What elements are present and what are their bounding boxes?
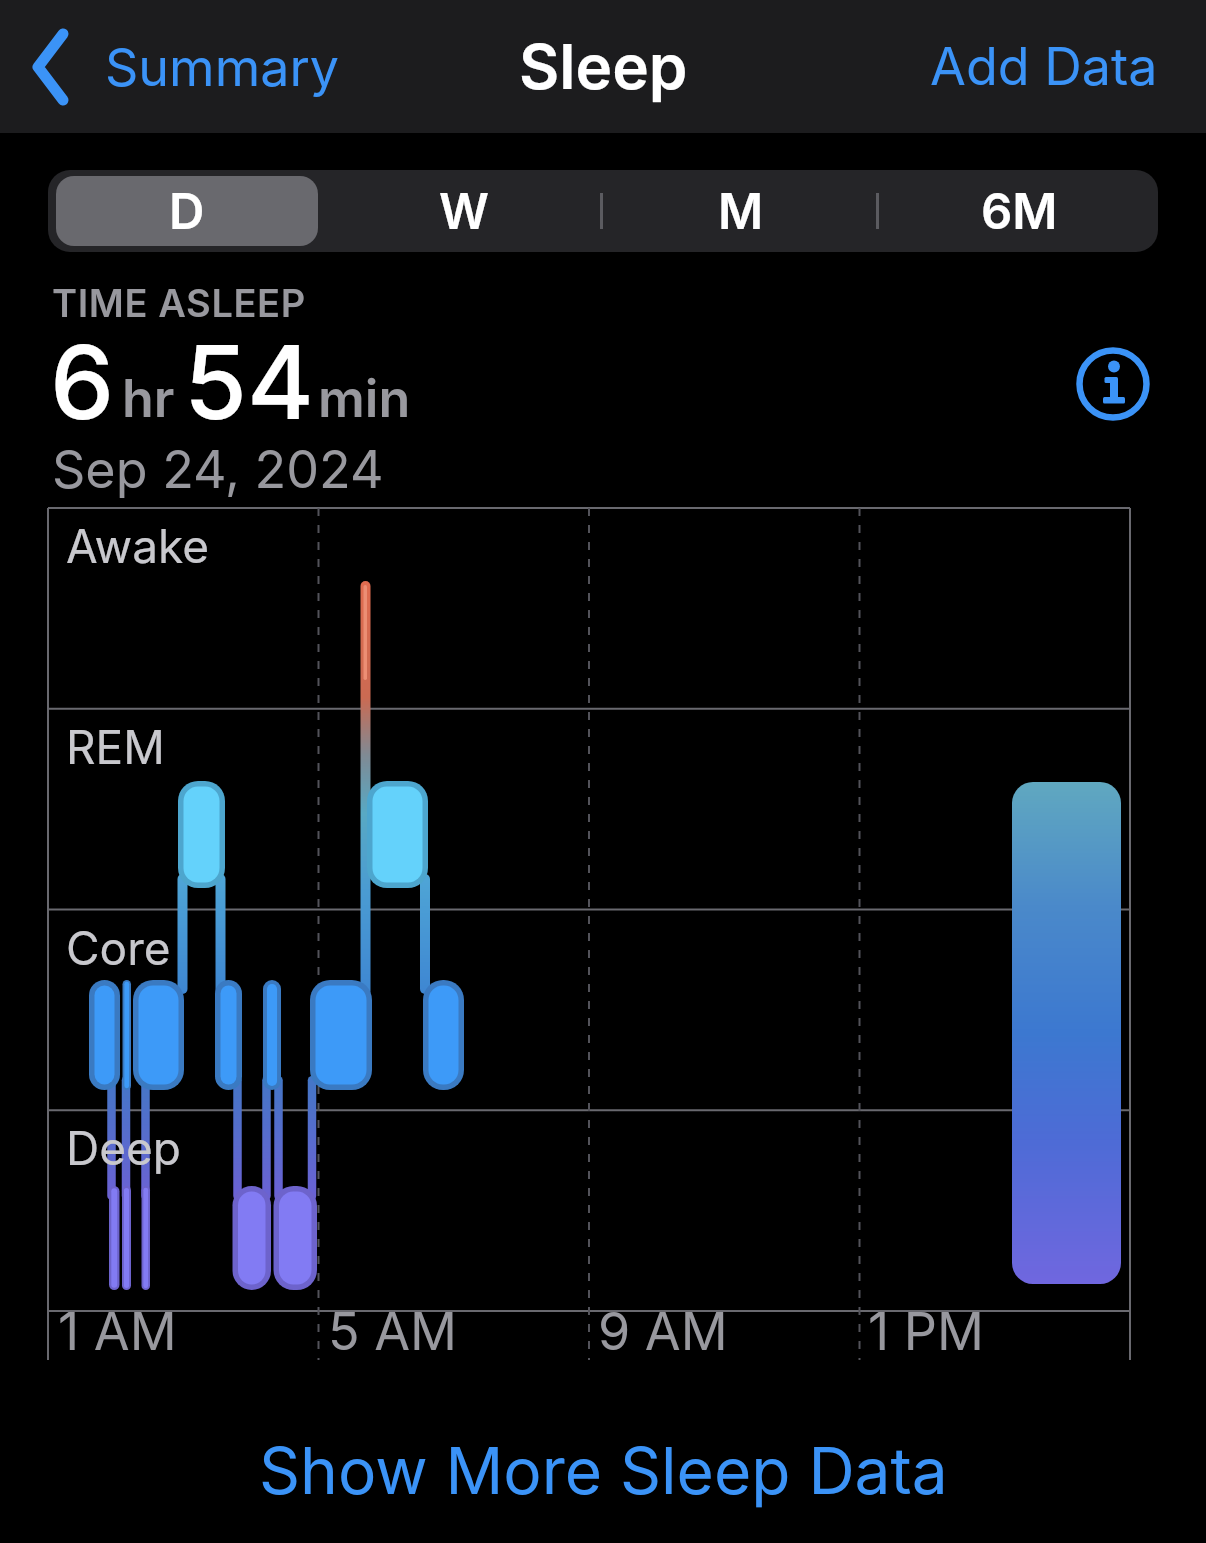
button[interactable]: Summary (0, 29, 340, 105)
staticText: 9 AM (598, 1300, 728, 1363)
staticText: TIME ASLEEP (52, 280, 306, 326)
staticText: D (169, 182, 205, 241)
staticText: Deep (66, 1120, 181, 1176)
staticText: 5 AM (328, 1300, 458, 1363)
staticText: 1 AM (58, 1300, 177, 1363)
staticText: 1 PM (868, 1300, 984, 1363)
staticText: Add Data (930, 35, 1158, 98)
staticText: M (718, 182, 764, 241)
staticText: Core (66, 920, 171, 976)
staticText: 6 (50, 320, 115, 443)
button[interactable]: W (325, 170, 602, 252)
button[interactable]: Show More Sleep Data (259, 1432, 948, 1509)
button[interactable]: Add Data (930, 35, 1206, 98)
staticText: W (439, 182, 489, 241)
staticText: Sleep (519, 29, 688, 104)
staticText: hr (122, 367, 175, 430)
staticText: Awake (66, 518, 210, 574)
staticText: Show More Sleep Data (259, 1432, 948, 1509)
staticText: 54 (184, 320, 314, 443)
button[interactable]: D (48, 170, 325, 252)
staticText: REM (66, 719, 165, 775)
staticText: Summary (105, 36, 340, 99)
staticText: Sep 24, 2024 (52, 438, 384, 501)
button[interactable]: M (602, 170, 880, 252)
button[interactable]: 6M (880, 170, 1158, 252)
staticText: min (318, 367, 411, 430)
button[interactable] (1076, 347, 1150, 421)
staticText: 6M (981, 182, 1058, 241)
